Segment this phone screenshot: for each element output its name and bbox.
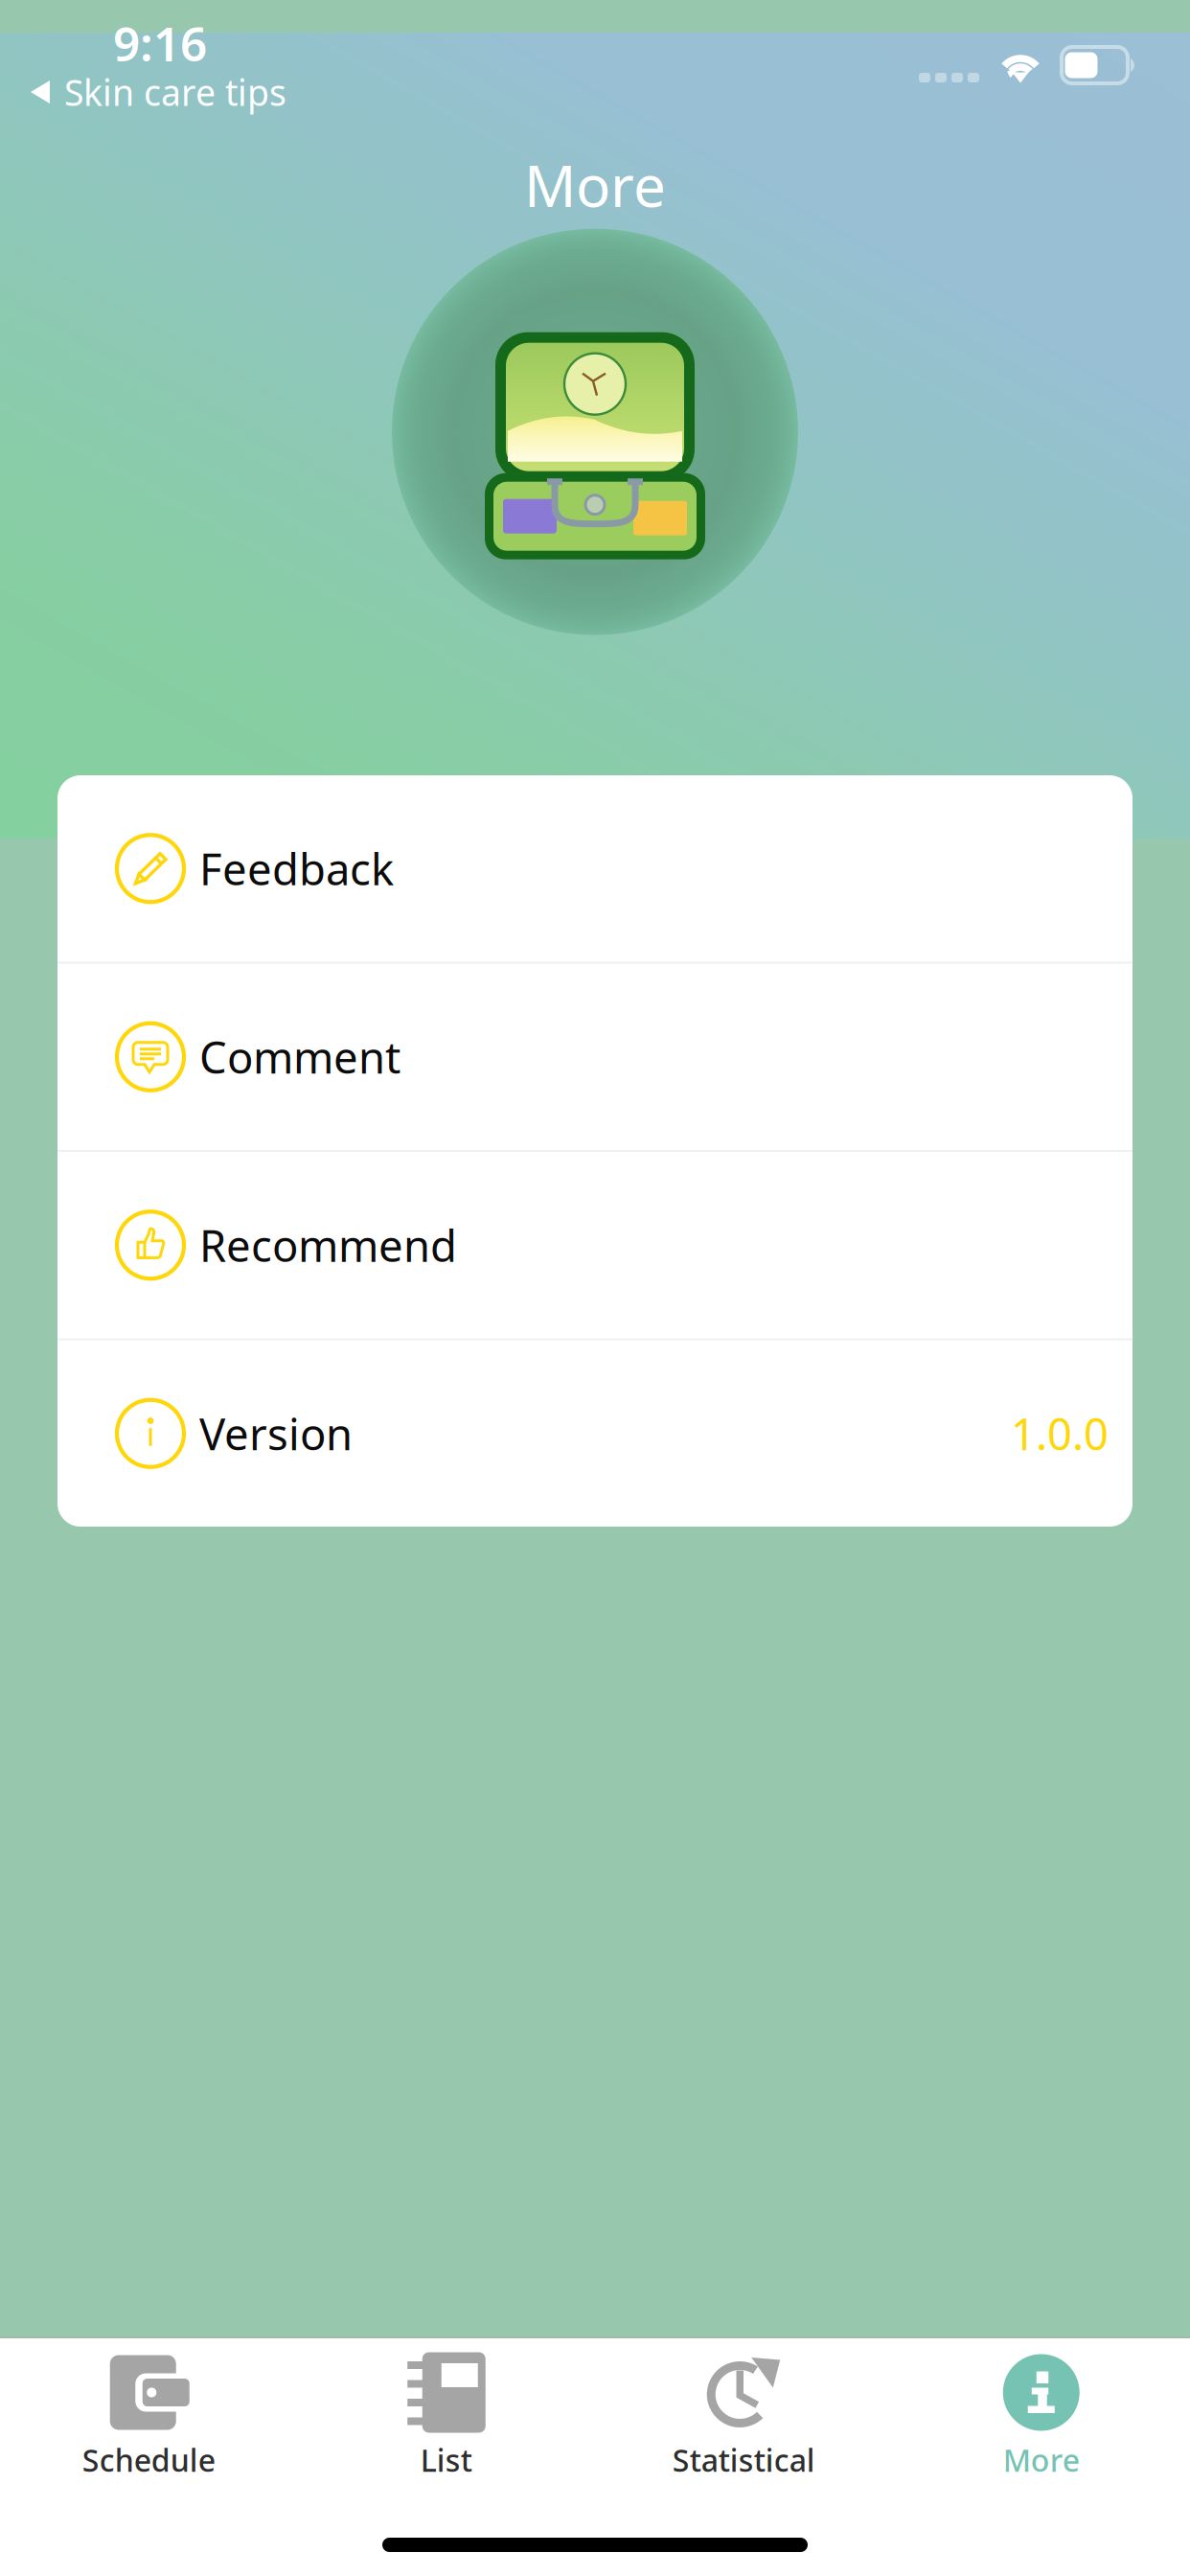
button[interactable]: More — [892, 2344, 1190, 2484]
staticText: 1.0.0 — [1011, 1405, 1109, 1462]
button[interactable]: List — [297, 2344, 595, 2484]
staticText: List — [420, 2439, 472, 2480]
button[interactable]: Feedback — [57, 775, 1133, 962]
staticText: Version — [199, 1405, 353, 1462]
staticText: More — [524, 147, 666, 223]
staticText: Feedback — [199, 840, 394, 897]
staticText: 9:16 — [113, 11, 207, 74]
button[interactable]: Skin care tips — [0, 67, 1190, 117]
button[interactable]: Schedule — [0, 2344, 297, 2484]
staticText: Comment — [199, 1028, 400, 1086]
button[interactable]: Recommend — [57, 1152, 1133, 1338]
staticText: Statistical — [672, 2439, 815, 2480]
staticText: More — [1003, 2439, 1080, 2480]
button[interactable]: Statistical — [595, 2344, 892, 2484]
button[interactable]: Version — [57, 1340, 1133, 1527]
staticText: Schedule — [82, 2439, 215, 2480]
staticText: Recommend — [199, 1216, 457, 1274]
button[interactable]: Comment — [57, 964, 1133, 1150]
staticText: Skin care tips — [64, 68, 286, 116]
